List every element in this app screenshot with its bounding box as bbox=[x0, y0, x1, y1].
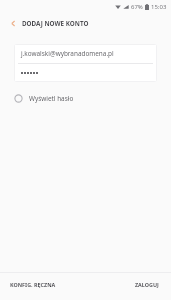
button[interactable] bbox=[14, 64, 157, 82]
button[interactable]: Wstecz bbox=[5, 15, 21, 31]
staticText: Wyświetl hasło bbox=[29, 94, 74, 103]
staticText: KONFIG. RĘCZNA bbox=[10, 281, 56, 288]
staticText: DODAJ NOWE KONTO bbox=[22, 19, 89, 28]
button[interactable]: Wyświetl hasło bbox=[14, 89, 157, 107]
staticText: 15:03 bbox=[151, 3, 167, 11]
staticText: j.kowalski@wybranadomena.pl bbox=[21, 49, 114, 58]
staticText: 67% bbox=[131, 3, 143, 11]
button[interactable]: j.kowalski@wybranadomena.pl bbox=[14, 44, 157, 63]
staticText: ZALOGUJ bbox=[135, 281, 159, 288]
button[interactable]: ZALOGUJ bbox=[132, 278, 162, 291]
button[interactable]: KONFIG. RĘCZNA bbox=[7, 278, 59, 291]
